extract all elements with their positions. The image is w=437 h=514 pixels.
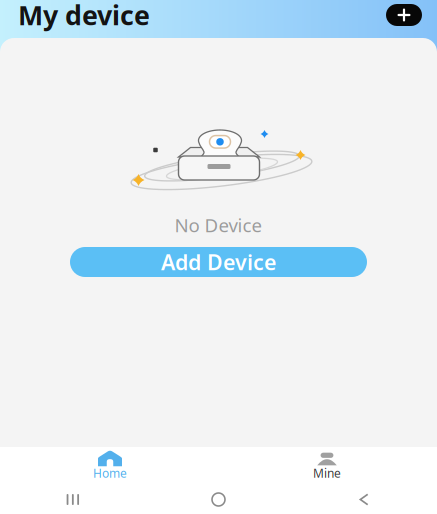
button[interactable]: Add device	[384, 0, 424, 32]
button[interactable]: Mine	[272, 447, 382, 485]
button[interactable]: Add Device	[70, 247, 367, 277]
button[interactable]: Recents	[0, 485, 146, 514]
staticText: Add Device	[161, 248, 276, 276]
staticText: Mine	[313, 465, 341, 481]
staticText: My device	[18, 0, 150, 33]
button[interactable]: Back	[291, 485, 437, 514]
button[interactable]: Home	[55, 447, 165, 485]
staticText: No Device	[174, 213, 262, 237]
button[interactable]: Home	[146, 485, 291, 514]
staticText: Home	[93, 465, 127, 481]
